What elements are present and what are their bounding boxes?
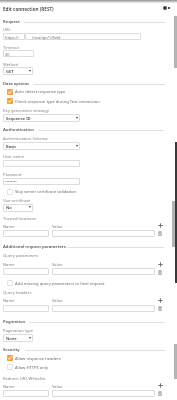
staticText: Pagination type	[3, 328, 34, 334]
staticText: Timeout	[3, 45, 19, 51]
button[interactable]	[3, 363, 153, 371]
button[interactable]	[3, 97, 153, 105]
staticText: Password	[3, 172, 22, 178]
button[interactable]: Help	[161, 4, 170, 12]
staticText: Additional request parameters	[3, 244, 66, 250]
button[interactable]: Add	[157, 261, 164, 268]
button[interactable]: Add	[157, 222, 164, 229]
staticText: Security	[3, 347, 20, 353]
staticText: 30	[5, 52, 10, 57]
staticText: Value	[52, 262, 63, 268]
staticText: Edit connection (REST)	[3, 6, 54, 12]
staticText: Skip server certificate validation	[15, 189, 77, 195]
staticText: Trusted locations	[3, 216, 36, 222]
button[interactable]: Delete	[157, 306, 164, 313]
button[interactable]	[25, 33, 141, 40]
button[interactable]	[3, 87, 153, 95]
button[interactable]	[3, 305, 49, 312]
button[interactable]	[52, 305, 155, 312]
button[interactable]	[3, 67, 33, 75]
button[interactable]: Delete	[157, 231, 164, 238]
button[interactable]	[3, 188, 153, 196]
button[interactable]	[52, 230, 155, 237]
staticText: https://	[5, 35, 19, 40]
button[interactable]: Delete	[157, 391, 164, 398]
staticText: Basic	[6, 144, 17, 149]
staticText: /rest/api/1/field	[32, 35, 61, 40]
button[interactable]: Delete	[157, 269, 164, 276]
staticText: User name	[3, 154, 24, 160]
button[interactable]	[3, 390, 49, 397]
staticText: Name	[3, 262, 15, 268]
staticText: Query parameters	[3, 253, 39, 259]
button[interactable]	[3, 279, 153, 287]
button[interactable]	[52, 390, 155, 397]
staticText: Authentication Schema	[3, 136, 48, 142]
staticText: Name	[3, 298, 15, 304]
button[interactable]	[3, 354, 153, 362]
staticText: Name	[3, 384, 15, 390]
button[interactable]	[3, 142, 80, 150]
staticText: Value	[52, 384, 63, 390]
staticText: Check response type during Test connecti…	[15, 99, 100, 105]
staticText: Sequence ID	[6, 116, 31, 121]
button[interactable]	[3, 50, 34, 57]
button[interactable]	[3, 160, 80, 167]
staticText: Authentication	[3, 127, 34, 133]
button[interactable]	[3, 204, 33, 212]
staticText: None	[6, 336, 17, 341]
staticText: Pagination	[3, 319, 26, 325]
staticText: No	[6, 205, 12, 210]
staticText: Value	[52, 298, 63, 304]
button[interactable]	[3, 230, 49, 237]
staticText: Add missing query parameters to final re…	[15, 281, 105, 287]
button[interactable]	[3, 268, 49, 275]
button[interactable]	[3, 33, 25, 40]
staticText: Value	[52, 224, 63, 230]
staticText: Request	[3, 19, 20, 25]
staticText: Allow response headers	[15, 356, 61, 362]
staticText: Allow HTTPS only	[15, 365, 49, 371]
staticText: ••••••••	[5, 179, 17, 184]
staticText: Query headers	[3, 290, 32, 296]
button[interactable]	[3, 114, 80, 122]
staticText: Name	[3, 224, 15, 230]
staticText: Key generation strategy	[3, 108, 49, 114]
button[interactable]	[3, 178, 80, 185]
button[interactable]	[52, 268, 155, 275]
staticText: URL	[3, 27, 11, 33]
button[interactable]: Add	[157, 297, 164, 304]
staticText: Use certificate	[3, 198, 31, 204]
staticText: GET	[6, 69, 14, 74]
staticText: Auto detect response type	[15, 89, 66, 95]
staticText: Redirect URL Whitelist	[3, 376, 46, 382]
button[interactable]	[3, 334, 33, 342]
button[interactable]: Add	[157, 382, 164, 389]
staticText: Data options	[3, 81, 30, 87]
staticText: Method	[3, 62, 19, 68]
